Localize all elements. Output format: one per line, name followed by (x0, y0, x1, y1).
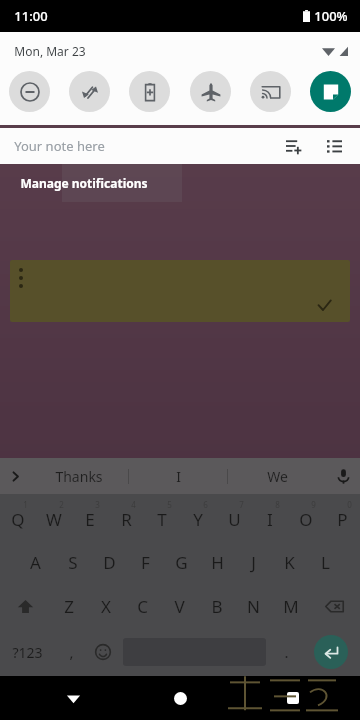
button[interactable]: 5 (144, 494, 180, 540)
button[interactable]: Thanks (30, 458, 128, 494)
staticText: K (284, 551, 295, 574)
button[interactable]: 6 (180, 494, 216, 540)
button[interactable]: Airplane mode (190, 71, 231, 112)
staticText: F (141, 551, 150, 574)
button[interactable]: Checklist (318, 130, 350, 162)
staticText: Thanks (55, 467, 103, 486)
button[interactable]: L (307, 540, 343, 584)
staticText: P (337, 508, 348, 531)
staticText: 7 (239, 499, 244, 510)
button[interactable]: Back (58, 683, 88, 713)
staticText: I (267, 508, 273, 531)
staticText: I (176, 467, 181, 486)
staticText: T (157, 508, 167, 531)
button[interactable]: M (272, 584, 309, 628)
staticText: 5 (167, 499, 172, 510)
staticText: Q (11, 508, 25, 531)
button[interactable]: 9 (288, 494, 324, 540)
button[interactable]: 1 (0, 494, 36, 540)
staticText: 11:00 (14, 7, 48, 25)
button[interactable]: N (235, 584, 272, 628)
button[interactable]: 2 (36, 494, 72, 540)
button[interactable]: We (228, 458, 326, 494)
button[interactable]: K (271, 540, 307, 584)
staticText: ?123 (12, 643, 43, 662)
button[interactable]: F (127, 540, 163, 584)
button[interactable]: B (198, 584, 235, 628)
staticText: U (228, 508, 241, 531)
staticText: 3 (95, 499, 100, 510)
button[interactable]: D (91, 540, 127, 584)
button[interactable]: ?123 (0, 628, 55, 676)
button[interactable]: S (54, 540, 91, 584)
button[interactable]: Cast screen (250, 71, 291, 112)
button[interactable]: Z (50, 584, 87, 628)
button[interactable]: J (235, 540, 271, 584)
staticText: 9 (311, 499, 316, 510)
staticText: J (251, 551, 256, 574)
staticText: . (284, 642, 289, 662)
staticText: R (121, 508, 132, 531)
button[interactable]: Add list item (278, 130, 310, 162)
button[interactable]: 4 (108, 494, 144, 540)
staticText: W (46, 508, 62, 531)
button[interactable]: G (163, 540, 199, 584)
staticText: V (174, 595, 185, 618)
staticText: X (101, 595, 111, 618)
button[interactable]: X (87, 584, 124, 628)
button[interactable]: New note (310, 71, 351, 112)
staticText: M (283, 595, 299, 618)
button[interactable]: 0 (324, 494, 360, 540)
button[interactable]: Manage notifications (18, 173, 150, 193)
button[interactable]: Enter (314, 635, 348, 669)
button[interactable]: Shift (0, 584, 50, 628)
button[interactable]: Battery saver (129, 71, 170, 112)
staticText: 6 (203, 499, 208, 510)
button[interactable]: C (124, 584, 161, 628)
button[interactable]: V (161, 584, 198, 628)
button[interactable]: 7 (216, 494, 252, 540)
button[interactable]: Recent apps (278, 683, 308, 713)
button[interactable]: H (199, 540, 235, 584)
staticText: H (211, 551, 224, 574)
button[interactable]: 3 (72, 494, 108, 540)
staticText: C (137, 595, 148, 618)
staticText: Z (64, 595, 74, 618)
staticText: O (299, 508, 313, 531)
staticText: Manage notifications (20, 175, 148, 191)
button[interactable]: Delete (309, 584, 360, 628)
staticText: E (85, 508, 95, 531)
staticText: 1 (23, 499, 28, 510)
button[interactable]: Home (165, 683, 195, 713)
button[interactable]: Auto rotate (69, 71, 110, 112)
staticText: G (175, 551, 188, 574)
button[interactable]: Your note here (0, 128, 360, 164)
staticText: Your note here (14, 137, 105, 155)
staticText: 100% (314, 7, 348, 25)
staticText: 8 (275, 499, 280, 510)
staticText: Mon, Mar 23 (14, 43, 86, 59)
staticText: 0 (347, 499, 352, 510)
staticText: A (30, 551, 41, 574)
staticText: S (68, 551, 78, 574)
button[interactable]: More suggestions (0, 458, 30, 494)
staticText: B (211, 595, 223, 618)
button[interactable]: 8 (252, 494, 288, 540)
staticText: 2 (59, 499, 64, 510)
staticText: Y (193, 508, 203, 531)
button[interactable]: Emoji (87, 628, 119, 676)
button[interactable]: A (17, 540, 54, 584)
staticText: We (267, 467, 288, 486)
button[interactable]: Voice input (326, 458, 360, 494)
button[interactable]: I (129, 458, 227, 494)
staticText: N (247, 595, 260, 618)
button[interactable]: Do not disturb (9, 71, 50, 112)
staticText: 4 (131, 499, 136, 510)
staticText: L (321, 551, 330, 574)
staticText: , (69, 642, 74, 662)
staticText: D (103, 551, 116, 574)
